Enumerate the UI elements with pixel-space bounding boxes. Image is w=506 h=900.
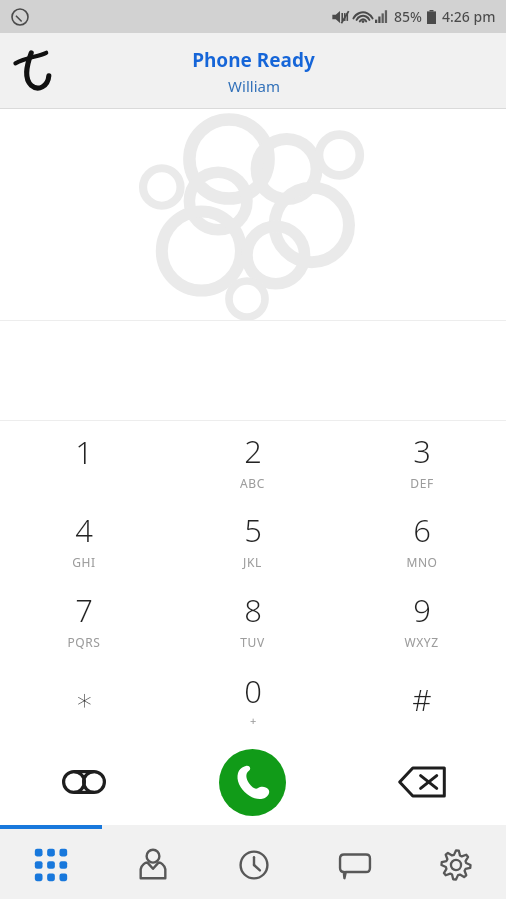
staticText: ABC xyxy=(240,475,265,491)
staticText: 4 xyxy=(75,509,93,551)
staticText: 4:26 pm xyxy=(442,7,496,26)
staticText: TUV xyxy=(240,634,265,650)
button[interactable]: Voicemail xyxy=(0,739,168,825)
staticText: 6 xyxy=(413,509,431,551)
button[interactable]: # xyxy=(337,659,506,739)
staticText: 8 xyxy=(244,589,262,631)
staticText: 3 xyxy=(413,430,431,472)
button[interactable]: 4 xyxy=(0,500,168,579)
staticText: 5 xyxy=(244,509,262,551)
button[interactable]: 6 xyxy=(337,500,506,579)
button[interactable]: 3 xyxy=(337,421,506,500)
button[interactable]: 9 xyxy=(337,579,506,659)
staticText: + xyxy=(250,713,257,728)
staticText: DEF xyxy=(410,475,434,491)
button[interactable]: Contacts xyxy=(102,825,203,899)
button[interactable]: 8 xyxy=(168,579,337,659)
staticText: William xyxy=(228,76,280,96)
button[interactable]: 0 xyxy=(168,659,337,739)
button[interactable]: Settings xyxy=(405,825,506,899)
staticText: # xyxy=(412,679,432,720)
button[interactable]: Messages xyxy=(304,825,405,899)
button[interactable]: ∗ xyxy=(0,659,168,739)
staticText: Phone Ready xyxy=(192,47,315,73)
button[interactable]: Dialpad xyxy=(0,825,102,899)
staticText: 1 xyxy=(75,431,93,473)
staticText: PQRS xyxy=(67,634,101,650)
staticText: 7 xyxy=(75,589,93,631)
staticText: 9 xyxy=(413,589,431,631)
button[interactable]: 2 xyxy=(168,421,337,500)
staticText: 85% xyxy=(394,7,422,26)
button[interactable]: Menu xyxy=(0,38,66,104)
staticText: MNO xyxy=(406,554,438,570)
button[interactable]: Call xyxy=(219,749,286,816)
staticText: WXYZ xyxy=(404,634,439,650)
button[interactable]: Recents xyxy=(203,825,304,899)
staticText: ∗ xyxy=(75,682,94,717)
staticText: JKL xyxy=(243,554,262,570)
staticText: GHI xyxy=(72,554,96,570)
button[interactable]: 1 xyxy=(0,421,168,500)
staticText: 0 xyxy=(244,670,262,712)
button[interactable]: 5 xyxy=(168,500,337,579)
staticText: 2 xyxy=(244,430,262,472)
button[interactable]: 7 xyxy=(0,579,168,659)
button[interactable]: Backspace xyxy=(337,739,506,825)
